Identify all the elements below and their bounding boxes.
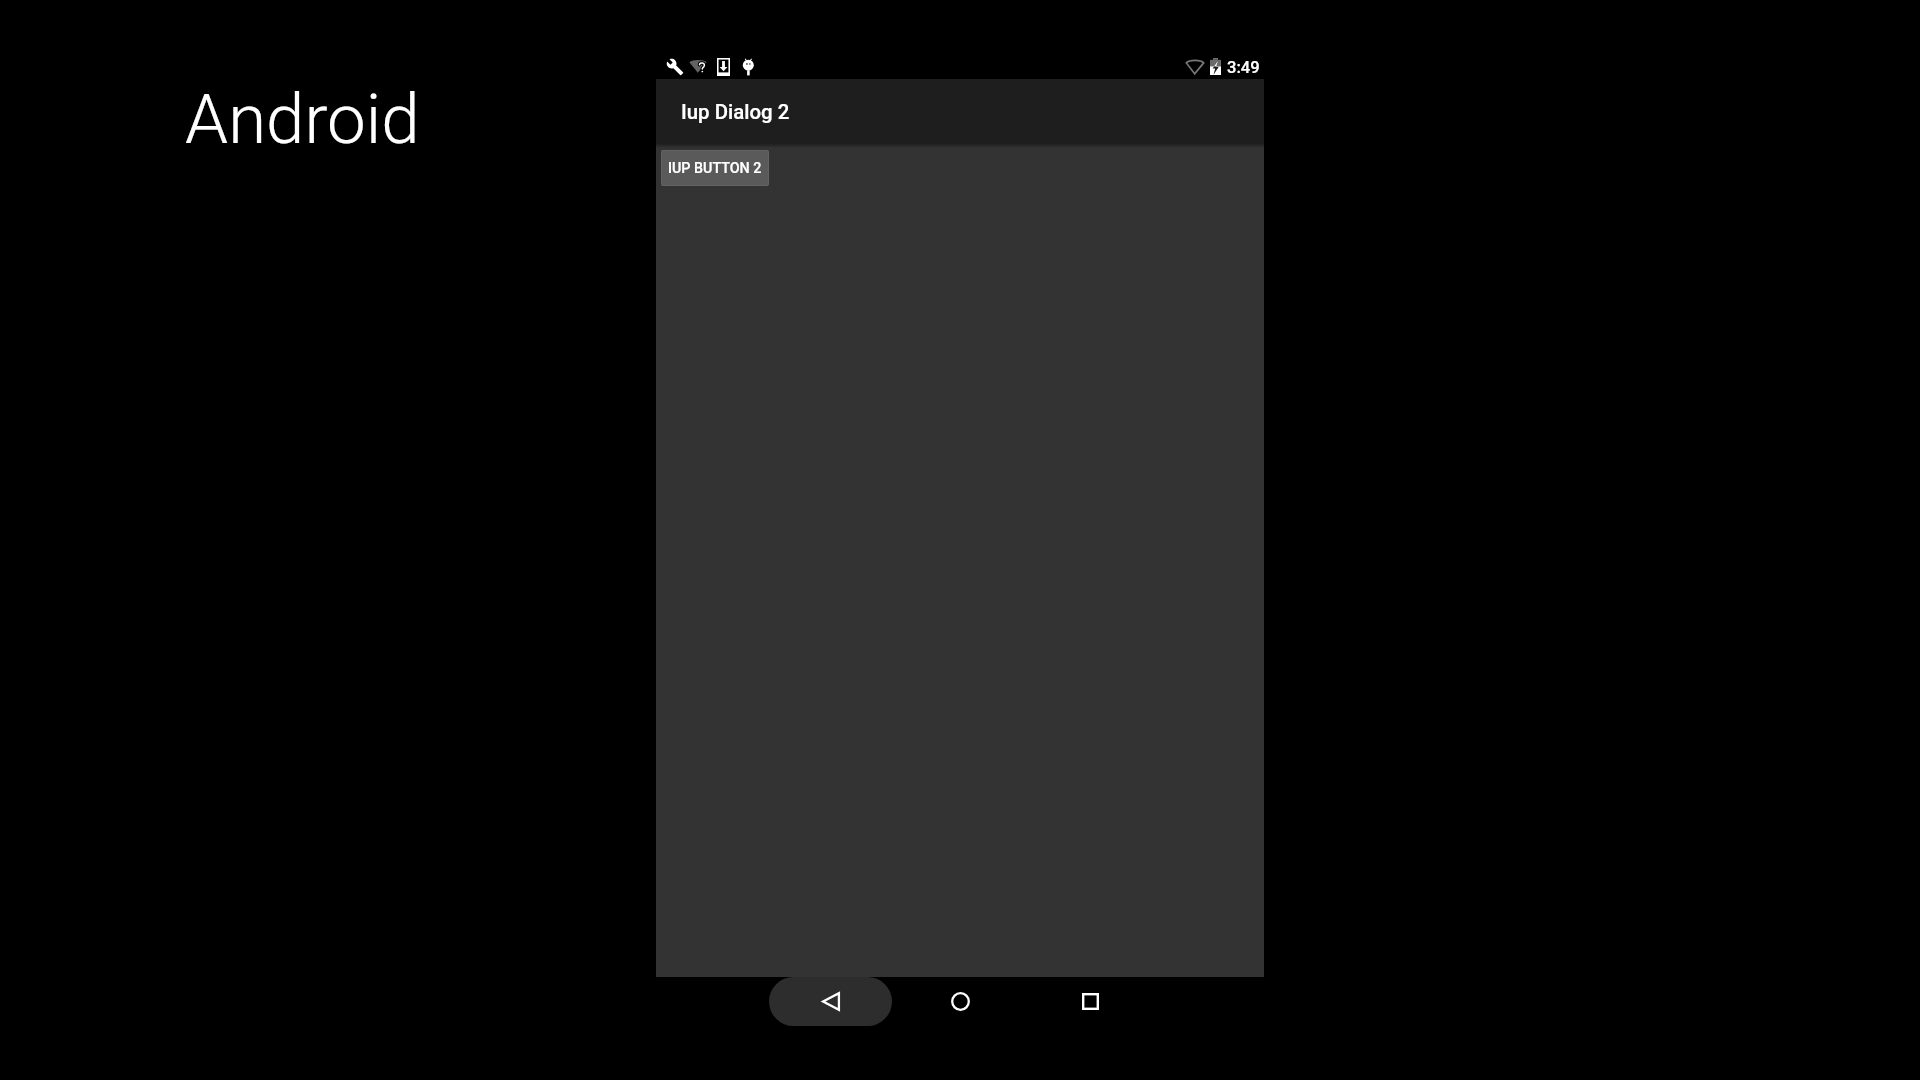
staticText: 3:49 <box>1227 58 1260 77</box>
button[interactable]: Home <box>936 977 984 1026</box>
button[interactable]: Recent apps <box>1066 977 1114 1026</box>
button[interactable]: IUP BUTTON 2 <box>661 150 769 186</box>
staticText: Android <box>185 79 420 160</box>
staticText: IUP BUTTON 2 <box>668 160 762 177</box>
staticText: Iup Dialog 2 <box>681 100 790 124</box>
button[interactable]: Back <box>769 977 892 1026</box>
